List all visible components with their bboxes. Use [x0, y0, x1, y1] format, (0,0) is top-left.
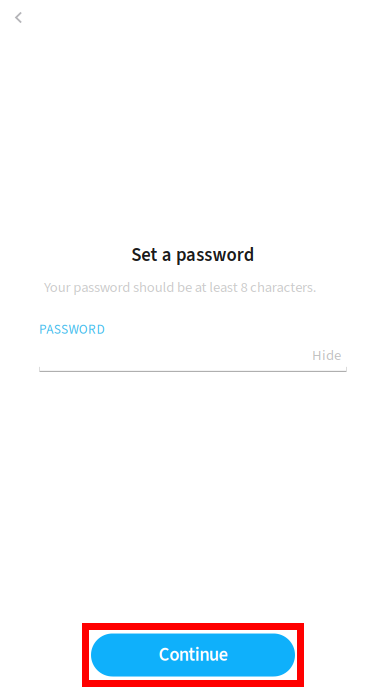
staticText: Continue — [159, 642, 227, 668]
staticText: Your password should be at least 8 chara… — [44, 277, 317, 298]
staticText: Hide — [312, 345, 341, 366]
staticText: PASSWORD — [39, 320, 104, 339]
staticText: Set a password — [131, 242, 255, 269]
button[interactable]: Hide — [312, 345, 347, 366]
button[interactable]: Back — [0, 0, 40, 37]
button[interactable]: Continue — [91, 633, 295, 676]
